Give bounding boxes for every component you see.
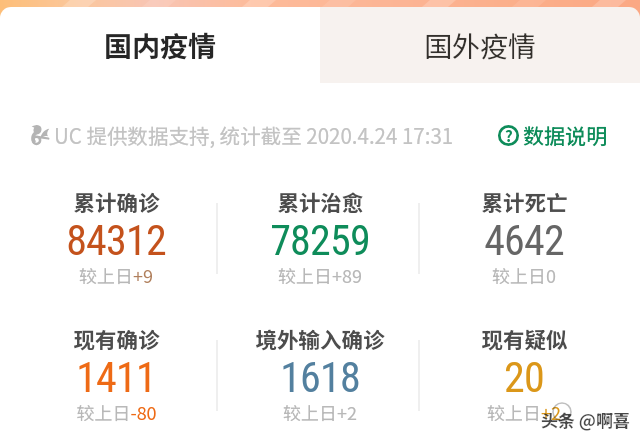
staticText: 现有疑似 xyxy=(481,323,568,354)
button[interactable]: 累计确诊 xyxy=(14,184,218,321)
staticText: 累计治愈 xyxy=(277,186,364,217)
other: UC browser xyxy=(29,124,51,146)
staticText: 1618 xyxy=(280,353,360,402)
staticText: 84312 xyxy=(66,216,166,265)
staticText: 数据说明 xyxy=(523,120,607,150)
staticText: 较上日+9 xyxy=(79,262,153,288)
button[interactable]: 境外输入确诊 xyxy=(218,321,422,441)
staticText: 较上日0 xyxy=(492,262,556,288)
button[interactable]: 现有疑似 xyxy=(422,321,626,441)
staticText: 境外输入确诊 xyxy=(255,323,385,354)
staticText: 较上日+89 xyxy=(278,262,362,288)
staticText: 较上日-80 xyxy=(76,399,157,425)
staticText: 78259 xyxy=(270,216,370,265)
staticText: 累计死亡 xyxy=(481,186,568,217)
staticText: 较上日+2 xyxy=(283,399,357,425)
staticText: 较上日+2 xyxy=(487,399,561,425)
button[interactable]: 数据说明 Data explanation xyxy=(498,120,607,150)
button[interactable]: 累计死亡 xyxy=(422,184,626,321)
staticText: 头条 @啊喜 xyxy=(541,407,630,432)
button[interactable]: 国外疫情 xyxy=(320,7,640,83)
button[interactable]: 累计治愈 xyxy=(218,184,422,321)
button[interactable]: 现有确诊 xyxy=(14,321,218,441)
staticText: 累计确诊 xyxy=(73,186,160,217)
staticText: 现有确诊 xyxy=(73,323,160,354)
staticText: 国内疫情 xyxy=(104,25,217,66)
staticText: 1411 xyxy=(76,353,156,402)
button[interactable]: 国内疫情 xyxy=(0,7,320,83)
staticText: 4642 xyxy=(484,216,564,265)
staticText: 20 xyxy=(504,353,544,402)
staticText: UC 提供数据支持, 统计截至 2020.4.24 17:31 xyxy=(54,120,454,150)
staticText: 国外疫情 xyxy=(424,25,537,66)
staticText: ? xyxy=(505,125,513,146)
